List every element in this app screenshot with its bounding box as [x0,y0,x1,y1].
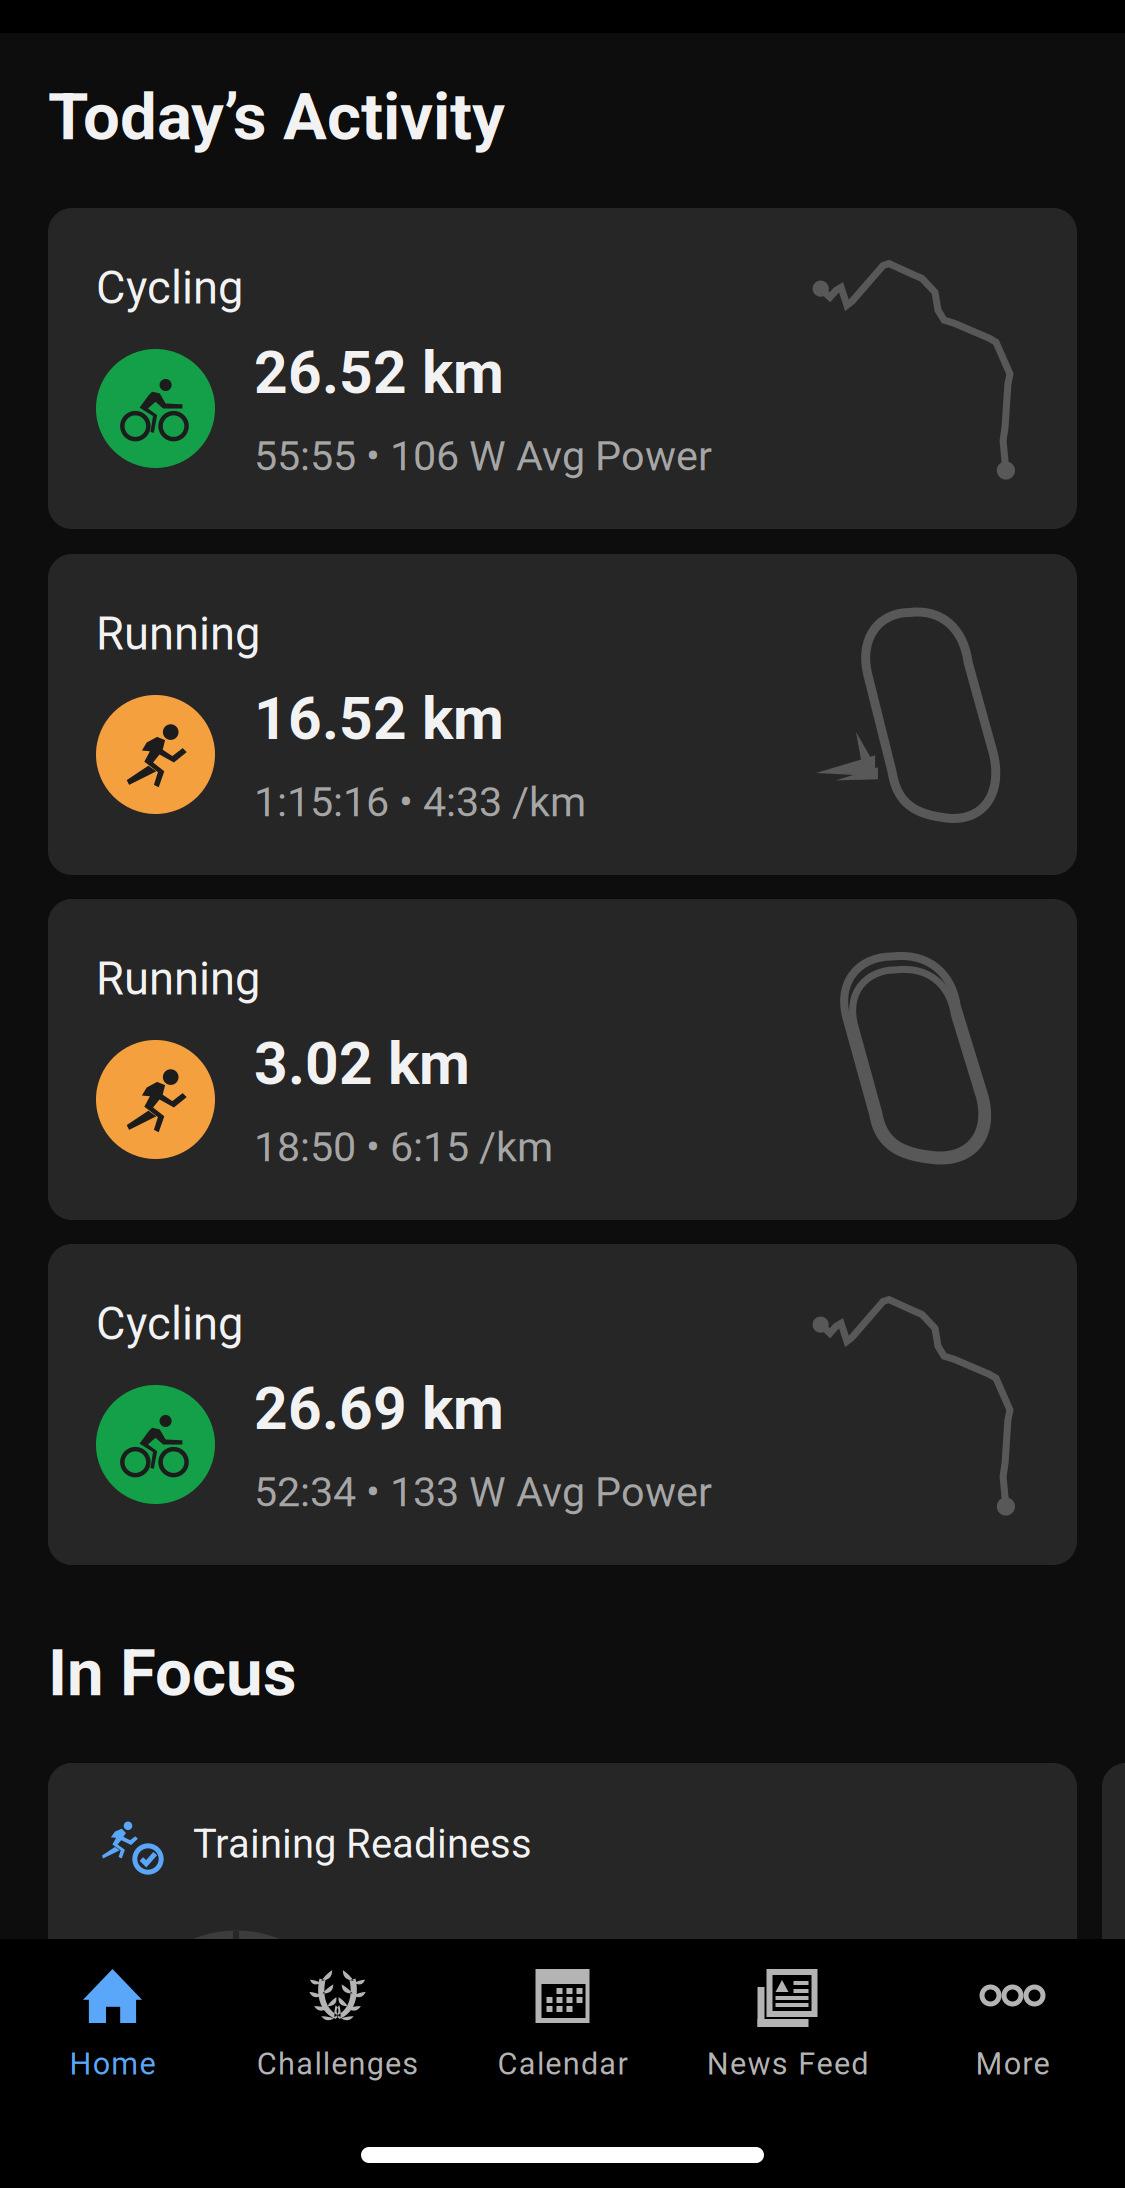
button[interactable]: Running [48,554,1077,875]
staticText: Calendar [497,2046,628,2082]
staticText: In Focus [48,1635,297,1711]
staticText: 18:50 • 6:15 /km [254,1123,553,1171]
staticText: 16.52 km [254,685,504,753]
button[interactable]: Training Readiness [1102,1763,1125,2188]
staticText: Challenges [257,2046,418,2082]
staticText: Cycling [96,261,243,314]
staticText: Home [70,2046,155,2082]
button[interactable]: News Feed [675,1939,900,2110]
staticText: News Feed [707,2046,868,2082]
button[interactable]: More [900,1939,1125,2110]
staticText: Cycling [96,1297,243,1350]
staticText: Training Readiness [193,1821,532,1867]
staticText: 55:55 • 106 W Avg Power [254,432,712,480]
button[interactable]: Cycling [48,208,1077,529]
staticText: Running [96,607,260,660]
button[interactable]: Training Readiness [48,1763,1077,2188]
button[interactable]: Running [48,899,1077,1220]
button[interactable]: Challenges [225,1939,450,2110]
staticText: 26.52 km [254,339,504,407]
button[interactable]: Cycling [48,1244,1077,1565]
button[interactable]: Home [0,1939,225,2110]
staticText: Running [96,952,260,1005]
staticText: 3.02 km [254,1030,470,1098]
button[interactable]: Calendar [450,1939,675,2110]
staticText: 52:34 • 133 W Avg Power [254,1468,712,1516]
staticText: Today’s Activity [48,79,505,155]
staticText: 1:15:16 • 4:33 /km [254,778,586,826]
staticText: More [976,2046,1049,2082]
staticText: 26.69 km [254,1375,504,1443]
